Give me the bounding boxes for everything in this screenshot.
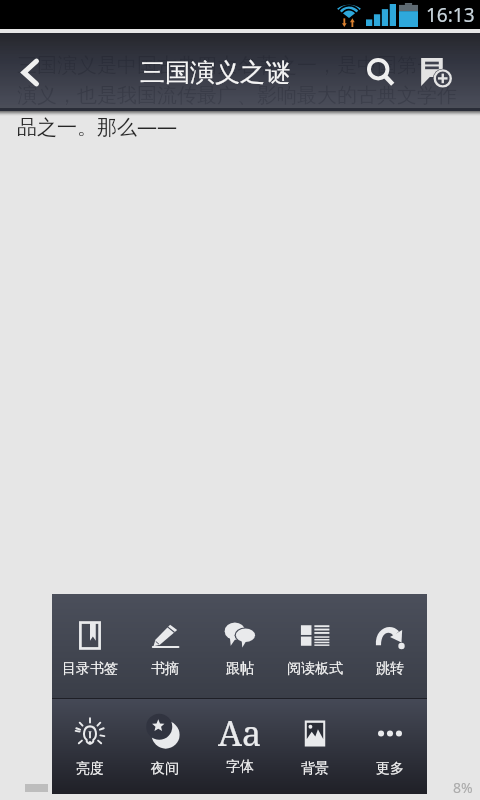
staticText: 8% (453, 778, 473, 797)
staticText: 跳转 (376, 660, 404, 678)
button[interactable]: 跳转 (352, 594, 427, 698)
button[interactable]: Search (353, 33, 409, 111)
staticText: 阅读板式 (287, 660, 343, 678)
staticText: 亮度 (76, 760, 104, 778)
button[interactable]: 跟帖 (202, 594, 277, 698)
button[interactable]: Aa (202, 699, 277, 794)
button[interactable]: 更多 (352, 699, 427, 794)
staticText: 跟帖 (226, 660, 254, 678)
staticText: 目录书签 (62, 660, 118, 678)
button[interactable]: 夜间 (127, 699, 202, 794)
staticText: 16:13 (426, 2, 475, 28)
button[interactable]: 阅读板式 (277, 594, 352, 698)
staticText: 三国演义是中国古典四大名著之一，是中国第一 演义，也是我国流传最广、影响最大的古… (17, 53, 457, 139)
button[interactable]: 亮度 (52, 699, 127, 794)
button[interactable]: 目录书签 (52, 594, 127, 698)
staticText: 字体 (226, 758, 254, 776)
staticText: 书摘 (151, 660, 179, 678)
button[interactable]: Add bookmark (409, 33, 465, 111)
staticText: 夜间 (151, 760, 179, 778)
staticText: Aa (218, 710, 262, 755)
button[interactable]: Back (0, 33, 60, 111)
staticText: 三国演义之谜 (140, 57, 290, 88)
staticText: 更多 (376, 760, 404, 778)
staticText: 背景 (301, 760, 329, 778)
button[interactable]: 书摘 (127, 594, 202, 698)
button[interactable]: 背景 (277, 699, 352, 794)
